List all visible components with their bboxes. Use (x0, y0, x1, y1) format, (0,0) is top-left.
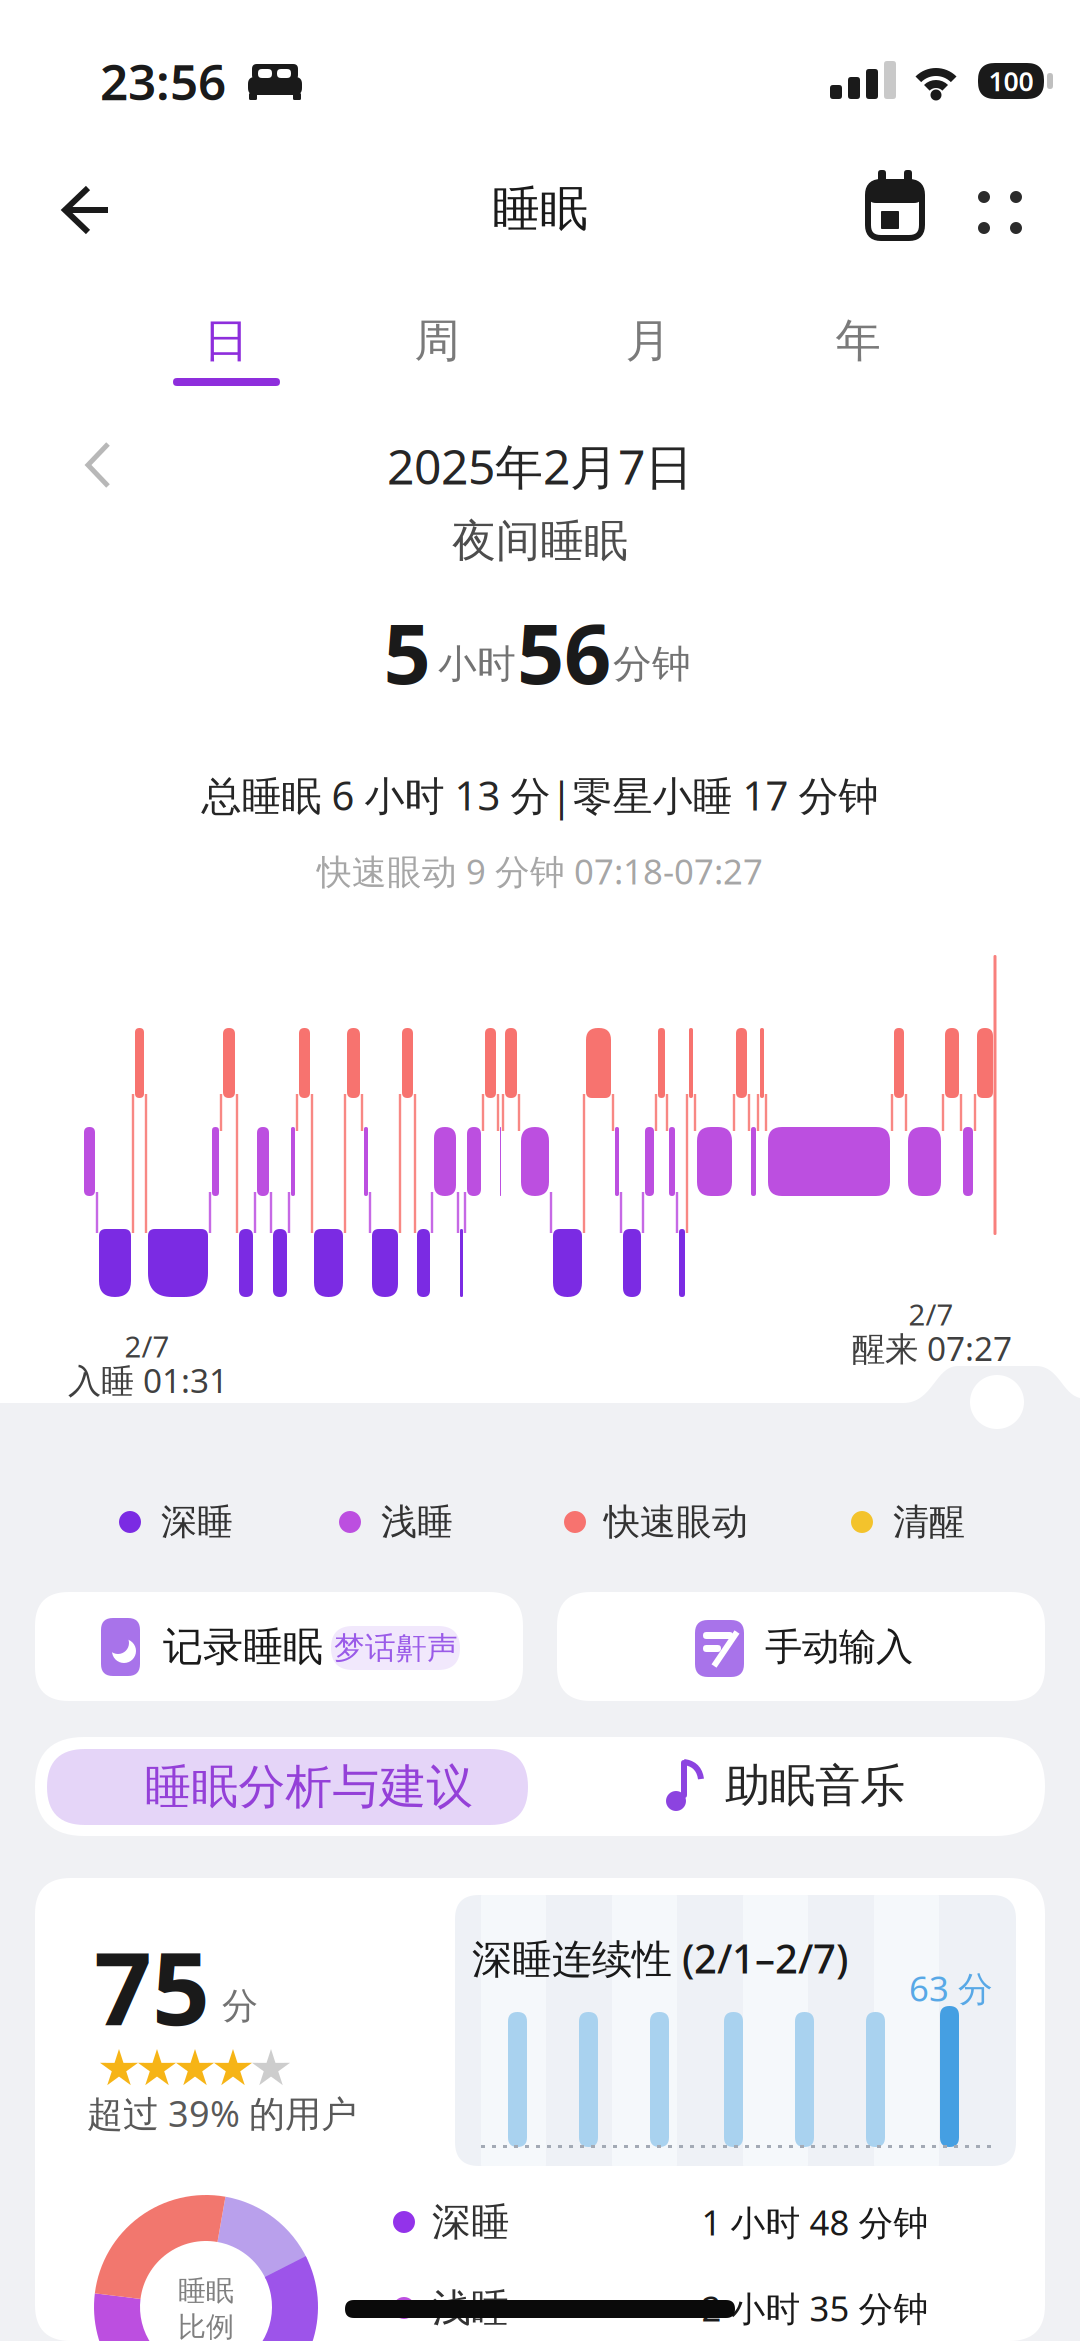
staticText: 醒来 07:27 (852, 1326, 1012, 1370)
staticText: 比例 (178, 2310, 234, 2341)
staticText: 入睡 01:31 (68, 1358, 228, 1402)
staticText: 手动输入 (765, 1624, 913, 1670)
staticText: 深睡 (432, 2198, 510, 2246)
staticText: 63 分 (909, 1965, 993, 2011)
button[interactable]: Calendar (856, 158, 934, 250)
staticText: 快速眼动 (604, 1500, 748, 1544)
staticText: 2025年2月7日 (387, 434, 693, 498)
staticText: 23:56 (100, 48, 226, 114)
staticText: 快速眼动 9 分钟 07:18-07:27 (317, 848, 763, 894)
button[interactable]: 助眠音乐 (540, 1737, 1045, 1836)
staticText: 2/7 (908, 1294, 953, 1333)
staticText: 分 (222, 1984, 258, 2028)
button[interactable]: 月 (588, 301, 708, 381)
button[interactable]: More (958, 171, 1042, 253)
staticText: 睡眠 (492, 179, 588, 238)
staticText: 月 (625, 313, 670, 369)
staticText: 助眠音乐 (725, 1758, 905, 1814)
staticText: 日 (203, 313, 248, 369)
staticText: 75 (94, 1919, 210, 2053)
staticText: 睡眠分析与建议 (144, 1758, 473, 1816)
staticText: 梦话鼾声 (334, 1629, 458, 1667)
button[interactable]: Back (40, 164, 132, 256)
staticText: 1 小时 48 分钟 (701, 2199, 928, 2245)
button[interactable]: 记录睡眠 (35, 1592, 523, 1701)
staticText: 2 小时 35 分钟 (701, 2285, 928, 2331)
staticText: 深睡 (161, 1500, 233, 1544)
staticText: 5 (383, 597, 430, 707)
button[interactable]: 日 (166, 301, 286, 381)
button[interactable]: Previous day (68, 434, 128, 496)
staticText: 超过 39% 的用户 (87, 2089, 357, 2137)
staticText: 浅睡 (432, 2284, 510, 2332)
staticText: 2/7 (124, 1326, 169, 1365)
staticText: 56 (517, 597, 611, 707)
staticText: 浅睡 (381, 1500, 453, 1544)
staticText: 周 (414, 313, 459, 369)
button[interactable]: 年 (798, 301, 918, 381)
staticText: 睡眠 (178, 2274, 234, 2308)
staticText: 清醒 (893, 1500, 965, 1544)
staticText: 记录睡眠 (163, 1622, 323, 1671)
staticText: 小时 (438, 640, 516, 688)
staticText: 总睡眠 6 小时 13 分|零星小睡 17 分钟 (201, 768, 878, 821)
staticText: 分钟 (613, 640, 691, 688)
button[interactable]: 睡眠分析与建议 (35, 1737, 540, 1836)
staticText: 100 (988, 63, 1033, 99)
staticText: 夜间睡眠 (452, 514, 628, 568)
button[interactable]: 周 (377, 301, 497, 381)
staticText: 深睡连续性 (2/1–2/7) (472, 1931, 848, 1984)
button[interactable]: 手动输入 (557, 1592, 1045, 1701)
staticText: 年 (835, 313, 880, 369)
